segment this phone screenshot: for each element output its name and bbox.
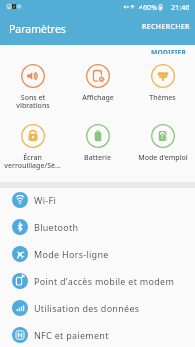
button[interactable]: RECHERCHER — [134, 16, 195, 38]
staticText: Mode Hors-ligne — [34, 248, 109, 260]
staticText: 21:46 — [171, 2, 190, 12]
staticText: Wi-Fi — [34, 194, 56, 206]
staticText: Batterie — [84, 153, 111, 163]
staticText: 60% — [143, 2, 158, 12]
button[interactable]: MODIFIER — [143, 45, 195, 57]
staticText: Bluetooth — [34, 221, 79, 233]
staticText: Thèmes — [149, 93, 176, 103]
button[interactable]: NFC et paiement — [0, 321, 195, 347]
button[interactable]: Mode Hors-ligne — [0, 240, 195, 267]
staticText: RECHERCHER — [142, 22, 190, 32]
staticText: NFC et paiement — [34, 329, 109, 341]
button[interactable]: Bluetooth — [0, 213, 195, 240]
staticText: MODIFIER — [151, 48, 187, 54]
button[interactable]: Sons et vibrations — [0, 64, 65, 110]
staticText: Mode d'emploi — [138, 153, 188, 163]
staticText: Paramètres — [9, 22, 66, 36]
staticText: Affichage — [82, 93, 114, 103]
staticText: Écran verrouillage/Sé... — [4, 153, 61, 170]
staticText: Utilisation des données — [34, 302, 140, 314]
button[interactable]: Affichage — [65, 64, 130, 103]
button[interactable]: Écran verrouillage/Sé... — [0, 124, 65, 170]
staticText: Point d'accès mobile et modem — [34, 275, 175, 287]
button[interactable]: Thèmes — [130, 64, 195, 103]
button[interactable]: Utilisation des données — [0, 294, 195, 321]
button[interactable]: Wi-Fi — [0, 186, 195, 213]
button[interactable]: Batterie — [65, 124, 130, 163]
staticText: Sons et vibrations — [16, 93, 50, 110]
button[interactable]: Mode d'emploi — [130, 124, 195, 163]
button[interactable]: Point d'accès mobile et modem — [0, 267, 195, 294]
